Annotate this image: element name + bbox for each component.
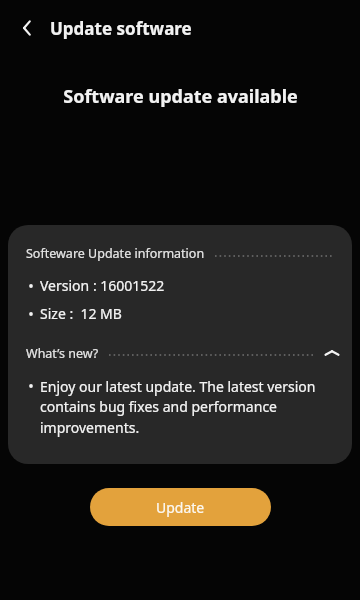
staticText: Softeware Update information (26, 245, 205, 262)
staticText: Software update available (63, 84, 298, 109)
staticText: Version : 16001522 (40, 276, 165, 295)
other: Collapse What's new (322, 343, 342, 363)
staticText: Update (156, 498, 205, 517)
staticText: Size : 12 MB (40, 304, 122, 323)
button[interactable]: What’s new? (26, 343, 342, 363)
staticText: Enjoy our latest update. The latest vers… (40, 377, 322, 438)
staticText: What’s new? (26, 345, 99, 362)
staticText: Update software (50, 17, 192, 40)
button[interactable]: Back (8, 8, 48, 48)
button[interactable]: Update (90, 488, 271, 526)
